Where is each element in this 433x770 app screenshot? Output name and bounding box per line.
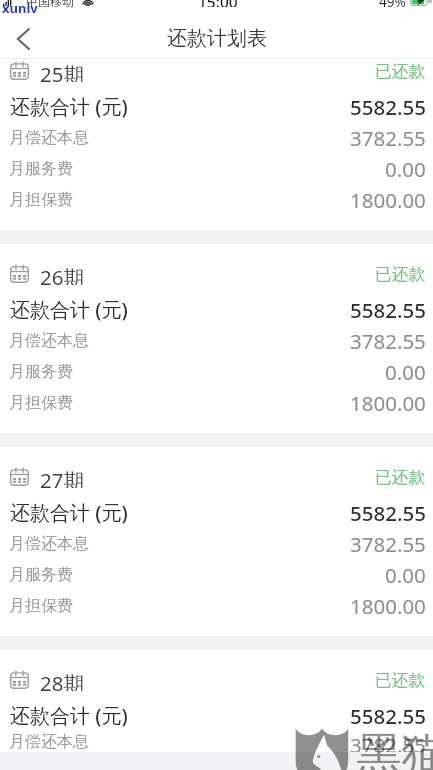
staticText: 已还款 bbox=[375, 670, 426, 691]
staticText: 5582.55 bbox=[350, 499, 426, 527]
button[interactable]: 26期 bbox=[0, 244, 433, 433]
staticText: 月偿还本息 bbox=[9, 128, 89, 148]
staticText: 3782.55 bbox=[350, 530, 426, 558]
staticText: 已还款 bbox=[375, 467, 426, 488]
staticText: 15:00 bbox=[198, 0, 238, 7]
staticText: 月服务费 bbox=[9, 159, 73, 179]
staticText: 月担保费 bbox=[9, 596, 73, 616]
staticText: 5582.55 bbox=[350, 296, 426, 324]
staticText: 月偿还本息 bbox=[9, 534, 89, 554]
staticText: 5582.55 bbox=[350, 93, 426, 121]
staticText: 27期 bbox=[40, 466, 84, 488]
staticText: 3782.55 bbox=[350, 327, 426, 355]
staticText: 1800.00 bbox=[350, 592, 426, 620]
staticText: 月偿还本息 bbox=[9, 732, 89, 752]
staticText: 26期 bbox=[40, 263, 84, 285]
staticText: 还款合计 (元) bbox=[10, 499, 128, 526]
staticText: 月担保费 bbox=[9, 393, 73, 413]
button[interactable]: 25期 bbox=[0, 59, 433, 230]
staticText: xunlv bbox=[2, 0, 38, 17]
button[interactable]: 28期 bbox=[0, 650, 433, 752]
staticText: 还款合计 (元) bbox=[10, 296, 128, 323]
staticText: 还款计划表 bbox=[167, 26, 267, 51]
button[interactable]: Back bbox=[0, 18, 44, 59]
staticText: 还款合计 (元) bbox=[10, 93, 128, 120]
staticText: 1800.00 bbox=[350, 186, 426, 214]
staticText: 1800.00 bbox=[350, 389, 426, 417]
staticText: 还款合计 (元) bbox=[10, 702, 128, 729]
staticText: 0.00 bbox=[385, 155, 426, 183]
staticText: 3782.55 bbox=[350, 124, 426, 152]
staticText: 月偿还本息 bbox=[9, 331, 89, 351]
staticText: 49% bbox=[379, 0, 406, 8]
staticText: 28期 bbox=[40, 669, 84, 691]
staticText: 月服务费 bbox=[9, 565, 73, 585]
staticText: 已还款 bbox=[375, 61, 426, 82]
staticText: 中国移动 bbox=[26, 0, 74, 9]
staticText: 0.00 bbox=[385, 358, 426, 386]
staticText: 已还款 bbox=[375, 264, 426, 285]
staticText: 0.00 bbox=[385, 561, 426, 589]
staticText: 月担保费 bbox=[9, 190, 73, 210]
staticText: 月服务费 bbox=[9, 362, 73, 382]
button[interactable]: 27期 bbox=[0, 447, 433, 636]
staticText: 25期 bbox=[40, 60, 84, 82]
staticText: 5582.55 bbox=[350, 702, 426, 730]
staticText: 3782.55 bbox=[350, 731, 426, 752]
